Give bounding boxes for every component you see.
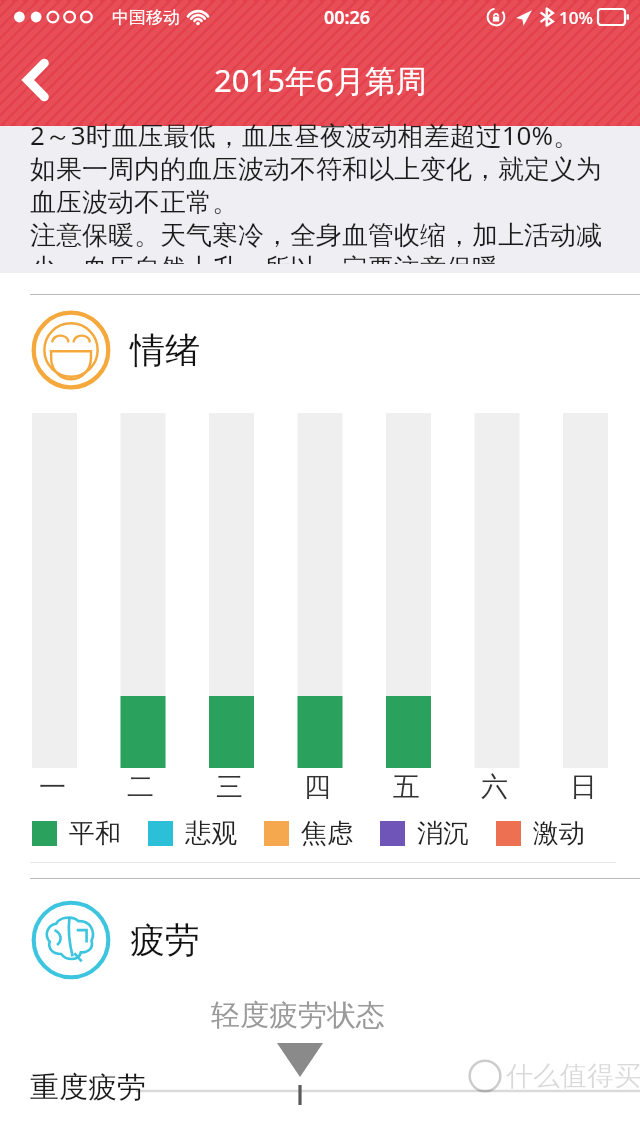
staticText: 激动 [533, 817, 585, 850]
staticText: 三 [216, 770, 243, 804]
staticText: 00:26 [324, 5, 371, 30]
button[interactable]: 消沉 [380, 817, 469, 850]
staticText: 情绪 [130, 328, 200, 372]
staticText: 如果一周内的血压波动不符和以上变化，就定义为 [30, 153, 602, 186]
button[interactable]: 焦虑 [264, 817, 353, 850]
button[interactable]: 悲观 [148, 817, 237, 850]
staticText: 日 [570, 770, 597, 804]
staticText: 疲劳 [130, 918, 200, 962]
staticText: 消沉 [417, 817, 469, 850]
button[interactable]: 疲劳 [30, 899, 640, 981]
staticText: 五 [393, 770, 420, 804]
staticText: 平和 [69, 817, 121, 850]
staticText: 少，血压自然上升，所以一定要注意保暖。 [30, 252, 524, 264]
staticText: 10% [559, 6, 593, 29]
staticText: 悲观 [185, 817, 237, 850]
button[interactable]: Back [8, 52, 64, 108]
staticText: 注意保暖。天气寒冷，全身血管收缩，加上活动减 [30, 219, 602, 252]
staticText: 血压波动不正常。 [30, 186, 238, 219]
staticText: 一 [39, 770, 66, 804]
button[interactable]: 情绪 [30, 309, 640, 391]
staticText: 轻度疲劳状态 [211, 997, 385, 1034]
staticText: 二 [127, 770, 154, 804]
staticText: 2～3时血压最低，血压昼夜波动相差超过10%。 [30, 117, 580, 153]
button[interactable]: 平和 [32, 817, 121, 850]
button[interactable]: 激动 [496, 817, 585, 850]
staticText: 焦虑 [301, 817, 353, 850]
staticText: 中国移动 [112, 7, 180, 28]
staticText: 重度疲劳 [30, 1069, 146, 1106]
staticText: 什么值得买 [506, 1059, 640, 1093]
staticText: 四 [304, 770, 331, 804]
staticText: 2015年6月第周 [214, 59, 427, 101]
staticText: 六 [481, 770, 508, 804]
